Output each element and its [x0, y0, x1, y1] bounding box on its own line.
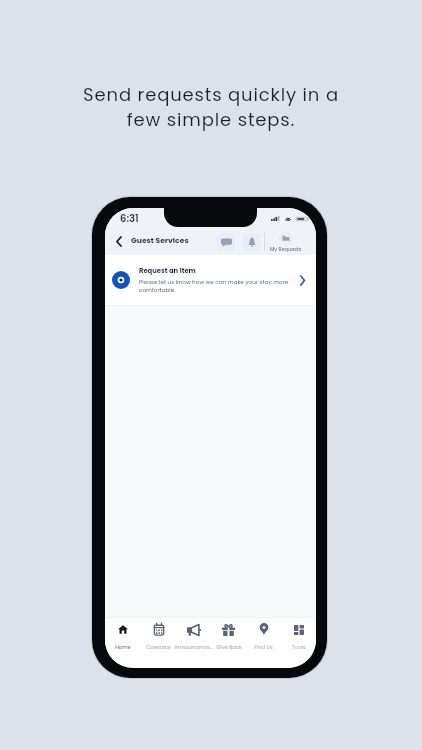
button[interactable]: Give Back	[211, 618, 246, 668]
button[interactable]: Find Us	[246, 618, 281, 668]
staticText: Calendar	[146, 644, 171, 651]
staticText: Request an Item	[139, 266, 196, 276]
staticText: Find Us	[254, 644, 273, 651]
button[interactable]: My Requests	[270, 231, 302, 253]
staticText: Guest Services	[131, 235, 189, 246]
button[interactable]: Tools	[281, 618, 316, 668]
staticText: Home	[115, 644, 131, 651]
staticText: Send requests quickly in a few simple st…	[83, 82, 339, 133]
button[interactable]: Notifications	[243, 233, 261, 251]
staticText: Announceme...	[174, 644, 213, 651]
staticText: Please let us know how we can make your …	[139, 278, 294, 294]
staticText: Give Back	[216, 644, 242, 651]
staticText: Tools	[292, 644, 306, 651]
button[interactable]: Announceme...	[176, 618, 211, 668]
staticText: My Requests	[270, 246, 302, 253]
button[interactable]: Calendar	[141, 618, 176, 668]
button[interactable]: Messages	[217, 233, 235, 251]
button[interactable]: Request an Item	[105, 255, 316, 305]
staticText: 6:31	[120, 211, 139, 225]
button[interactable]: Back	[109, 232, 127, 250]
button[interactable]: Home	[105, 618, 141, 668]
